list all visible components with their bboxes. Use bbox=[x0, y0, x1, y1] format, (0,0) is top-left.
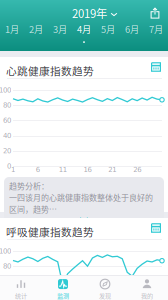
staticText: 心跳健康指数趋势 bbox=[6, 63, 94, 78]
staticText: 统计 bbox=[15, 291, 27, 300]
staticText: 60 bbox=[3, 116, 11, 124]
staticText: 0 bbox=[7, 162, 11, 170]
staticText: 1月 bbox=[5, 22, 19, 36]
staticText: 一四该月的心跳健康指数整体处于良好的区间，趋势… bbox=[9, 192, 153, 215]
button[interactable]: 4月 bbox=[72, 24, 96, 43]
staticText: 6月 bbox=[125, 22, 139, 36]
staticText: 20 bbox=[3, 147, 11, 155]
staticText: 2月 bbox=[29, 22, 43, 36]
staticText: 100 bbox=[0, 86, 11, 94]
staticText: 26 bbox=[133, 165, 141, 174]
staticText: 80 bbox=[3, 262, 11, 270]
button[interactable]: 2月 bbox=[24, 24, 48, 43]
button[interactable]: 6月 bbox=[120, 24, 144, 43]
staticText: 6 bbox=[36, 165, 40, 174]
button[interactable]: 1月 bbox=[0, 24, 24, 43]
staticText: 11 bbox=[59, 165, 67, 174]
button[interactable]: 2019年 bbox=[66, 3, 123, 23]
staticText: 7月 bbox=[149, 22, 163, 36]
button[interactable]: 趋势分析： bbox=[4, 177, 164, 225]
button[interactable]: Share bbox=[143, 3, 167, 23]
button[interactable]: 统计 bbox=[0, 279, 42, 300]
staticText: 16 bbox=[83, 165, 91, 174]
button[interactable]: 7月 bbox=[144, 24, 168, 43]
staticText: 监测 bbox=[57, 291, 69, 300]
staticText: 发现 bbox=[99, 291, 111, 300]
button[interactable]: Calendar range bbox=[145, 58, 167, 76]
button[interactable]: 监测 bbox=[42, 279, 84, 300]
button[interactable]: 我的 bbox=[126, 279, 168, 300]
staticText: 2019年 bbox=[72, 5, 107, 21]
staticText: 21 bbox=[108, 165, 116, 174]
button[interactable]: Calendar range bbox=[145, 219, 167, 237]
button[interactable]: 3月 bbox=[48, 24, 72, 43]
staticText: 4月 bbox=[77, 22, 91, 36]
staticText: 5月 bbox=[101, 22, 115, 36]
button[interactable]: 5月 bbox=[96, 24, 120, 43]
staticText: 趋势分析： bbox=[9, 180, 49, 192]
staticText: 40 bbox=[3, 132, 11, 140]
staticText: 我的 bbox=[141, 291, 153, 300]
button[interactable]: 发现 bbox=[84, 279, 126, 300]
staticText: 呼吸健康指数趋势 bbox=[6, 224, 94, 239]
staticText: 100 bbox=[0, 247, 11, 255]
staticText: 1 bbox=[11, 165, 15, 174]
staticText: 80 bbox=[3, 101, 11, 109]
staticText: 3月 bbox=[53, 22, 67, 36]
